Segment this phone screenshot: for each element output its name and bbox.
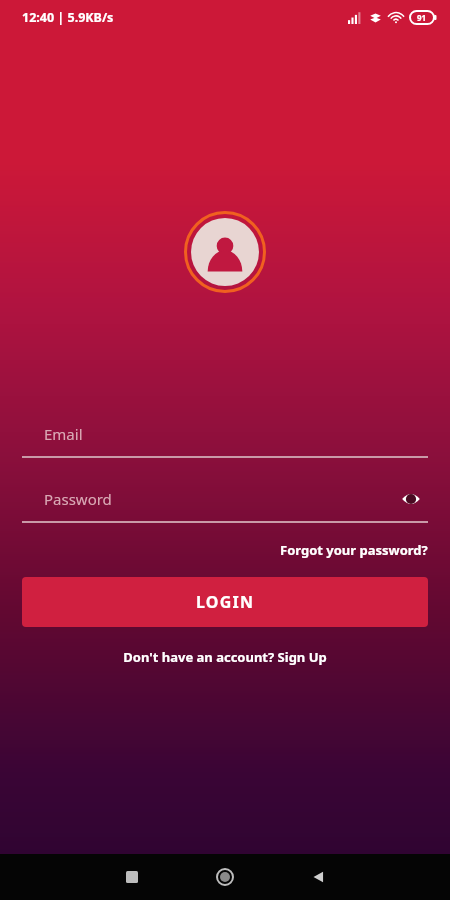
button[interactable]: Forgot your password? [280,537,428,563]
button[interactable]: Don't have an account? Sign Up [117,644,333,670]
staticText: 91 [417,12,427,23]
staticText: Password [44,489,112,509]
staticText: Forgot your password? [280,541,428,559]
button[interactable]: LOGIN [22,577,428,627]
button[interactable]: Show password [394,482,428,516]
other: Profile avatar [184,211,266,293]
staticText: Email [44,424,83,444]
staticText: LOGIN [196,591,255,613]
button[interactable]: Home [208,860,242,894]
button[interactable]: Password [22,477,428,521]
button[interactable]: Recents [116,861,148,893]
button[interactable]: Email [22,412,428,456]
button[interactable]: Back [302,861,334,893]
staticText: 12:40 | 5.9KB/s [22,9,114,26]
staticText: Don't have an account? Sign Up [123,648,327,666]
